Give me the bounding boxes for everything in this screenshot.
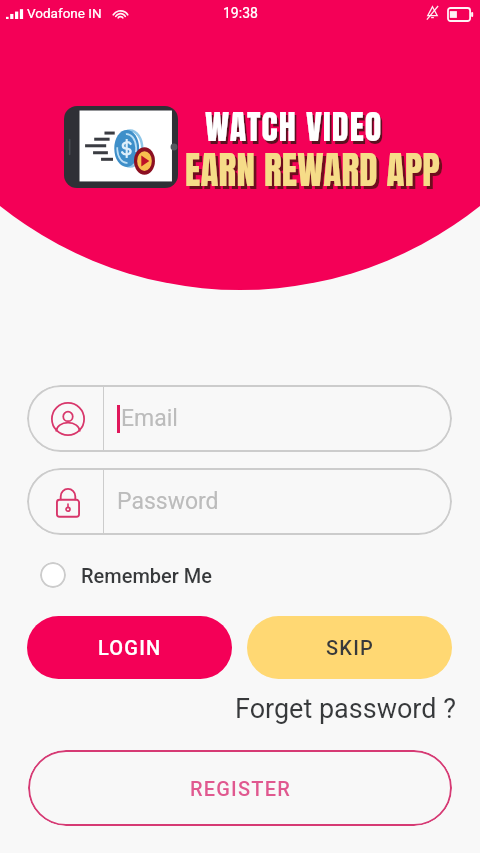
staticText: REGISTER — [190, 777, 291, 800]
staticText: Vodafone IN — [27, 5, 102, 21]
staticText: EARN REWARD APP — [185, 142, 441, 198]
button[interactable]: SKIP — [247, 616, 452, 679]
staticText: Email — [121, 405, 178, 432]
button[interactable]: Forget password ? — [228, 688, 463, 730]
button[interactable]: Password — [27, 468, 452, 535]
button[interactable]: Email — [27, 385, 452, 452]
button[interactable]: LOGIN — [27, 616, 232, 679]
staticText: 19:38 — [223, 5, 258, 21]
button[interactable]: REGISTER — [28, 750, 452, 826]
staticText: Password — [117, 488, 219, 515]
other: Password — [51, 485, 85, 519]
staticText: EARN REWARD APP — [188, 145, 444, 201]
staticText: WATCH VIDEO — [207, 104, 385, 155]
staticText: Forget password ? — [235, 693, 456, 725]
staticText: LOGIN — [98, 636, 162, 659]
staticText: SKIP — [326, 636, 374, 659]
staticText: Remember Me — [81, 564, 213, 587]
staticText: WATCH VIDEO — [205, 101, 383, 152]
other: Watch video earn reward logo — [64, 106, 178, 188]
button[interactable]: Remember Me — [34, 556, 219, 594]
other: Email — [51, 402, 85, 436]
